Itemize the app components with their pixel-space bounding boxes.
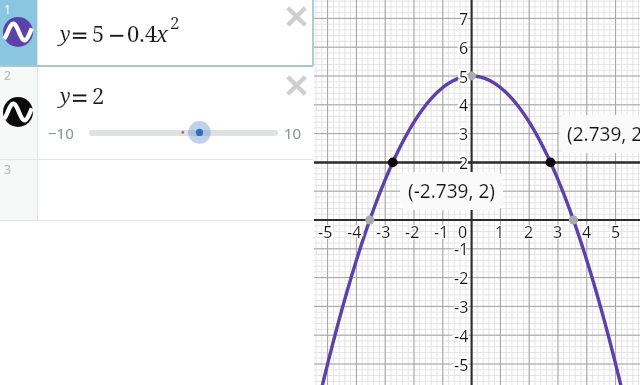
staticText: 3 [554,220,564,242]
staticText: 5 [92,18,105,48]
staticText: 0 [457,220,467,242]
staticText: 3 [460,124,470,146]
button[interactable]: (-2.739, 2) [408,172,495,210]
staticText: -4 [347,221,362,243]
staticText: 2 [457,153,467,175]
staticText: -2 [455,267,470,289]
staticText: 4 [583,222,593,244]
staticText: -3 [377,221,392,243]
staticText: 1 [4,1,11,17]
staticText: -2 [454,266,469,288]
staticText: 0 [458,222,468,244]
staticText: -1 [434,222,449,244]
staticText: -2 [455,268,470,290]
staticText: 1 [460,181,470,203]
staticText: -4 [455,325,470,347]
staticText: 5 [611,222,621,244]
staticText: -1 [455,238,470,260]
staticText: -4 [346,221,361,243]
staticText: -2 [405,221,420,243]
button[interactable]: Expression 1 [0,0,38,66]
button[interactable]: Delete expression [287,7,306,26]
staticText: -2 [405,220,420,242]
staticText: 7 [459,7,469,29]
staticText: -2 [452,266,467,288]
staticText: 2 [526,220,536,242]
staticText: 5 [457,67,467,89]
staticText: -1 [455,240,470,262]
staticText: 4 [459,93,469,115]
staticText: 3 [457,122,467,144]
staticText: -1 [435,222,450,244]
staticText: -4 [454,326,469,348]
staticText: -5 [317,222,332,244]
staticText: -5 [452,354,467,376]
staticText: 6 [457,37,467,59]
staticText: 2 [523,222,533,244]
staticText: 1 [460,179,470,201]
staticText: -1 [432,220,447,242]
staticText: -4 [452,326,467,348]
staticText: -1 [435,221,450,243]
button[interactable]: Delete expression [287,76,306,95]
staticText: 7 [457,9,467,31]
staticText: -5 [455,354,470,376]
staticText: 3 [552,220,562,242]
staticText: 2 [459,153,469,175]
staticText: 0 [459,221,469,243]
staticText: 1 [457,182,467,204]
staticText: 4 [582,222,592,244]
staticText: 5 [457,66,467,88]
staticText: 4 [581,222,591,244]
staticText: -1 [432,221,447,243]
staticText: x [156,18,169,48]
staticText: -5 [320,220,335,242]
staticText: 6 [460,38,470,60]
staticText: 2 [459,152,469,174]
button[interactable]: Toggle graph [3,97,33,127]
staticText: y [60,82,71,109]
staticText: -1 [454,237,469,259]
staticText: 3 [459,123,469,145]
staticText: -2 [455,266,470,288]
staticText: -4 [349,222,364,244]
button[interactable]: Slider [89,130,278,136]
staticText: 5 [459,67,469,89]
staticText: −10 [48,123,74,143]
staticText: -2 [452,267,467,289]
staticText: 4 [582,221,592,243]
staticText: -5 [318,220,333,242]
staticText: -5 [318,222,333,244]
staticText: -5 [317,220,332,242]
staticText: -1 [454,238,469,260]
staticText: 1 [459,181,469,203]
staticText: 0 [459,220,469,242]
staticText: -2 [406,221,421,243]
staticText: 6 [460,35,470,57]
staticText: 2 [524,221,534,243]
staticText: -3 [455,295,470,317]
staticText: -1 [432,222,447,244]
staticText: 4 [457,96,467,118]
staticText: -3 [455,296,470,318]
staticText: 3 [460,122,470,144]
staticText: 7 [460,8,470,30]
button[interactable]: Toggle graph [3,17,33,47]
staticText: 2 [460,151,470,173]
staticText: 2 [170,11,180,34]
staticText: (2.739, 2) [567,121,640,147]
staticText: 4 [457,94,467,116]
staticText: -1 [455,237,470,259]
staticText: -1 [452,237,467,259]
staticText: 1 [497,222,507,244]
staticText: 5 [611,220,621,242]
staticText: 0 [458,220,468,242]
staticText: -3 [452,295,467,317]
staticText: 5 [612,221,622,243]
staticText: -4 [452,325,467,347]
staticText: 5 [460,66,470,88]
button[interactable]: (2.739, 2) [567,115,640,153]
staticText: -3 [376,220,391,242]
staticText: 3 [553,220,563,242]
staticText: 4 [460,96,470,118]
